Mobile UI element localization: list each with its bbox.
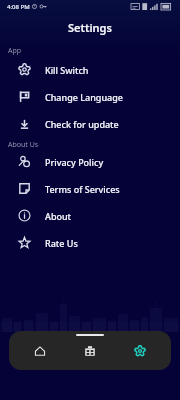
staticText: Privacy Policy: [45, 156, 104, 168]
staticText: Check for update: [45, 118, 119, 130]
button[interactable]: About: [0, 202, 180, 229]
staticText: Change Language: [45, 91, 123, 103]
button[interactable]: Rate Us: [0, 229, 180, 256]
staticText: 4:08 PM: [7, 3, 30, 11]
staticText: Terms of Services: [45, 183, 120, 195]
button[interactable]: Settings: [122, 333, 158, 369]
staticText: Settings: [68, 20, 112, 35]
staticText: About Us: [8, 140, 39, 150]
button[interactable]: Kill Switch: [0, 56, 180, 83]
staticText: Rate Us: [45, 237, 78, 249]
button[interactable]: Terms of Services: [0, 175, 180, 202]
staticText: About: [45, 210, 72, 222]
staticText: Kill Switch: [45, 64, 89, 76]
staticText: App: [8, 46, 22, 56]
button[interactable]: Apps: [72, 333, 108, 369]
button[interactable]: Change Language: [0, 83, 180, 110]
button[interactable]: Privacy Policy: [0, 148, 180, 175]
button[interactable]: Check for update: [0, 110, 180, 137]
button[interactable]: Home: [22, 333, 58, 369]
